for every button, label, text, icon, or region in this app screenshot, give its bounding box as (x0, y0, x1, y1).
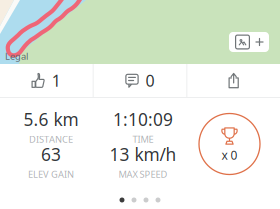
button[interactable]: Page 1 (119, 197, 124, 202)
staticText: MAX SPEED (118, 168, 167, 180)
staticText: 5.6 km (23, 108, 78, 131)
staticText: ELEV GAIN (28, 168, 74, 180)
button[interactable]: Share (187, 64, 280, 97)
button[interactable]: 1 (0, 64, 93, 97)
button[interactable]: Achievements (184, 111, 275, 176)
staticText: 1:10:09 (113, 108, 173, 131)
staticText: 13 km/h (109, 143, 176, 166)
staticText: Legal (5, 50, 28, 62)
staticText: 0 (145, 70, 154, 91)
staticText: DISTANCE (29, 133, 73, 145)
staticText: x 0 (221, 147, 237, 163)
staticText: 63 (41, 143, 61, 166)
staticText: TIME (132, 133, 153, 145)
button[interactable]: 0 (94, 64, 186, 97)
button[interactable]: Add photo (229, 32, 269, 52)
staticText: 1 (52, 70, 61, 91)
